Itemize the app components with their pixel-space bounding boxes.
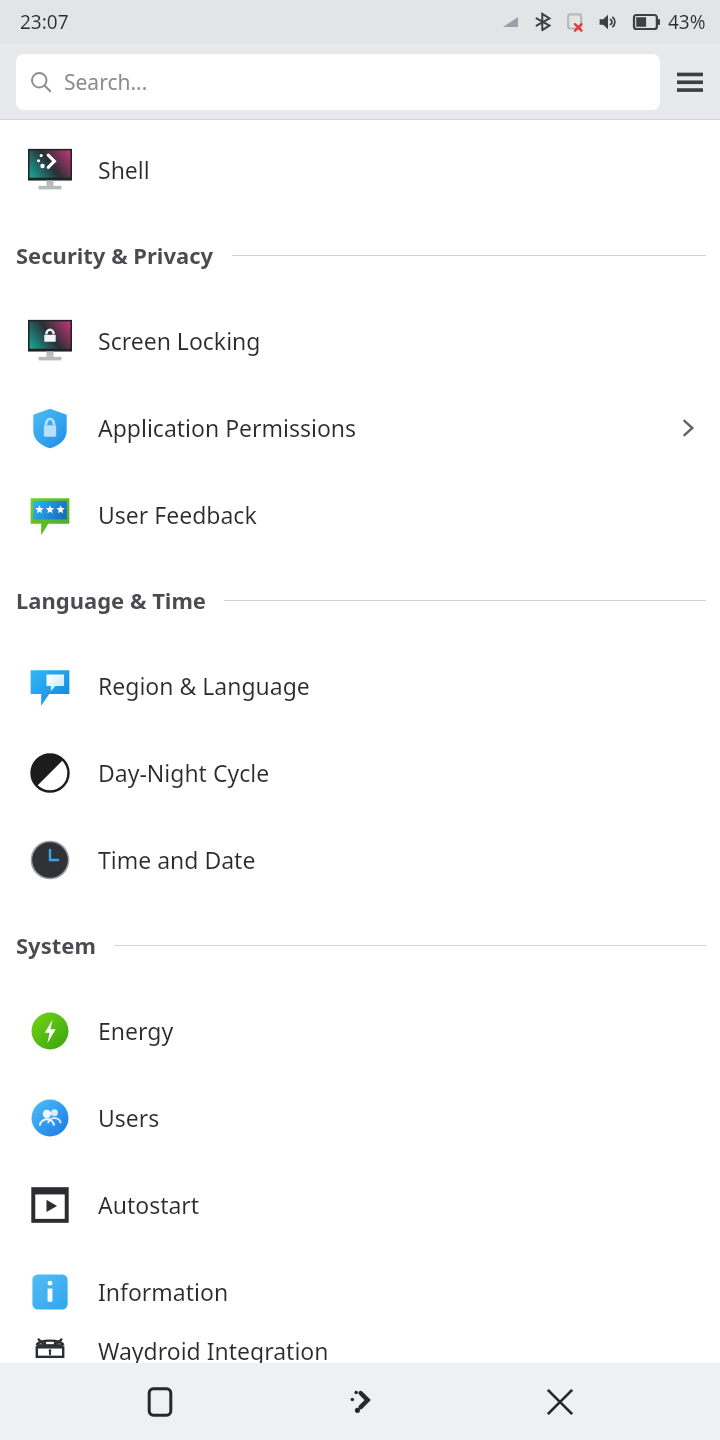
staticText: Autostart [98, 1189, 200, 1220]
button[interactable]: Day-Night Cycle [0, 729, 720, 816]
button[interactable]: User Feedback [0, 471, 720, 558]
button[interactable]: Close [520, 1363, 600, 1440]
button[interactable]: Recents [120, 1363, 200, 1440]
staticText: Application Permissions [98, 412, 357, 443]
staticText: Shell [98, 154, 150, 185]
button[interactable]: Information [0, 1248, 720, 1335]
button[interactable]: Application Permissions [0, 384, 720, 471]
staticText: Energy [98, 1015, 174, 1046]
staticText: Day-Night Cycle [98, 757, 270, 788]
staticText: 23:07 [20, 9, 69, 35]
staticText: Region & Language [98, 670, 310, 701]
button[interactable]: Energy [0, 987, 720, 1074]
button[interactable]: Screen Locking [0, 297, 720, 384]
staticText: Search... [64, 68, 148, 97]
button[interactable]: Shell [0, 126, 720, 213]
button[interactable]: Waydroid Integration [0, 1335, 720, 1363]
button[interactable]: Autostart [0, 1161, 720, 1248]
staticText: Waydroid Integration [98, 1335, 329, 1363]
staticText: Security & Privacy [16, 240, 214, 270]
button[interactable]: Region & Language [0, 642, 720, 729]
staticText: Screen Locking [98, 325, 261, 356]
staticText: 43% [668, 9, 706, 35]
button[interactable]: Users [0, 1074, 720, 1161]
staticText: User Feedback [98, 499, 257, 530]
staticText: Time and Date [98, 844, 256, 875]
staticText: Language & Time [16, 585, 206, 615]
button[interactable]: Menu [660, 52, 720, 112]
staticText: Users [98, 1102, 160, 1133]
staticText: System [16, 930, 96, 960]
button[interactable]: Shell [320, 1363, 400, 1440]
button[interactable]: Time and Date [0, 816, 720, 903]
button[interactable]: Search... [16, 54, 660, 110]
staticText: Information [98, 1276, 229, 1307]
